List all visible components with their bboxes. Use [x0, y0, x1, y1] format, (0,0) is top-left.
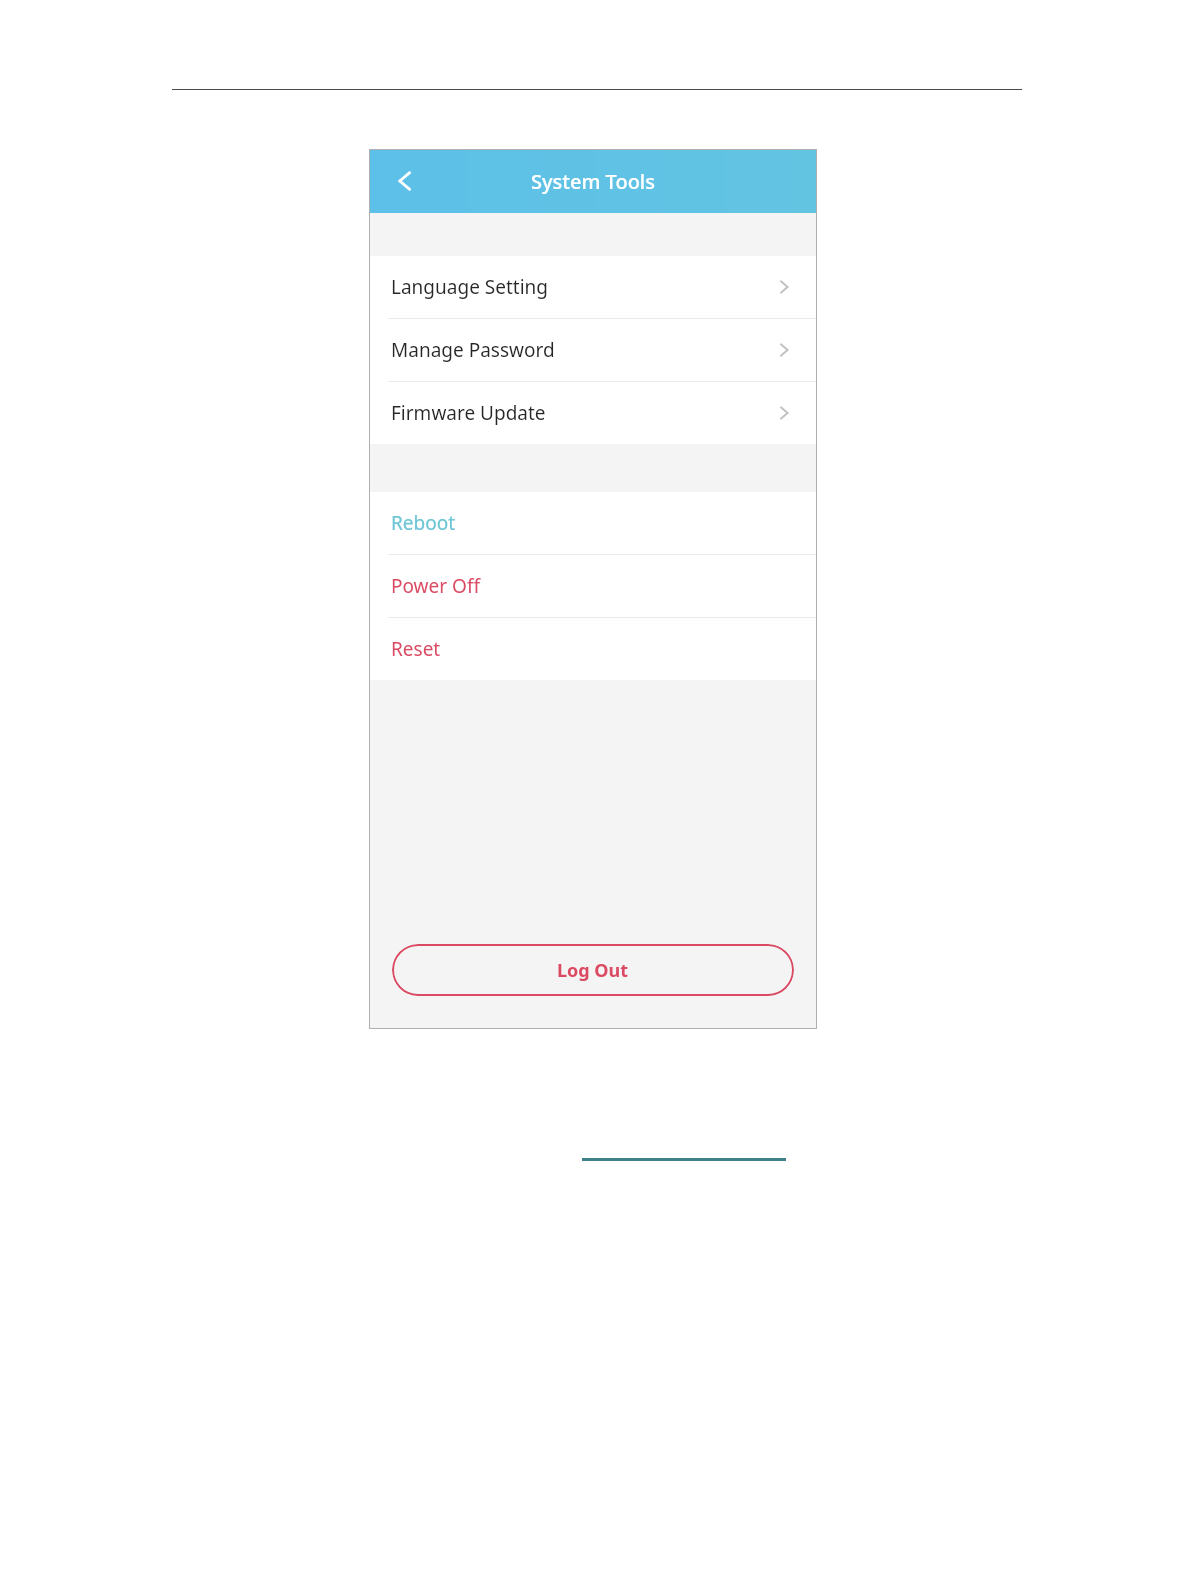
staticText: Log Out [557, 958, 629, 983]
button[interactable]: Manage Password [369, 319, 817, 381]
staticText: System Tools [531, 168, 655, 195]
staticText: Power Off [391, 573, 480, 599]
button[interactable]: Back [381, 157, 429, 205]
button[interactable]: Power Off [369, 555, 817, 617]
staticText: Language Setting [391, 274, 771, 300]
staticText: Manage Password [391, 337, 771, 363]
button[interactable]: Reset [369, 618, 817, 680]
button[interactable]: Language Setting [369, 256, 817, 318]
staticText: Reboot [391, 510, 456, 536]
button[interactable]: Firmware Update [369, 382, 817, 444]
staticText: Firmware Update [391, 400, 771, 426]
button[interactable]: Log Out [392, 944, 794, 996]
staticText: Reset [391, 636, 441, 662]
button[interactable]: Reboot [369, 492, 817, 554]
